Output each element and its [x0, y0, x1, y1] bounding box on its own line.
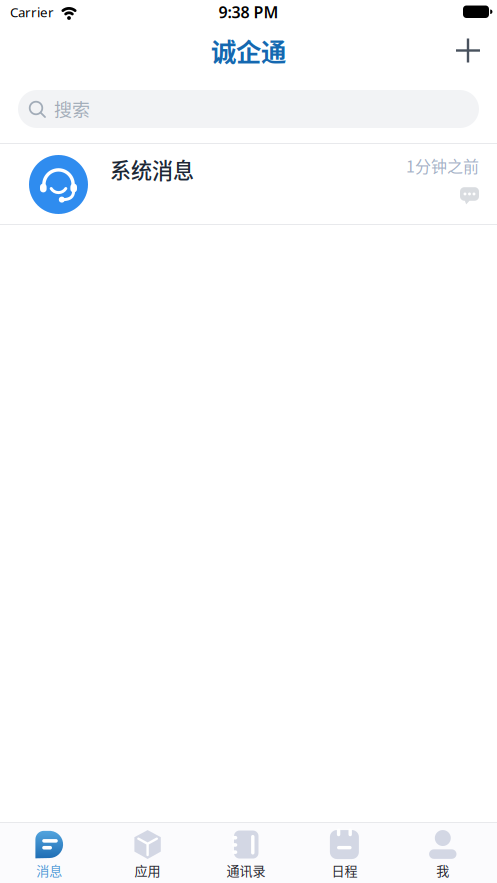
- staticText: 1分钟之前: [406, 154, 479, 177]
- staticText: 搜索: [54, 96, 90, 122]
- button[interactable]: 搜索: [0, 90, 497, 128]
- button[interactable]: 我: [394, 820, 492, 883]
- staticText: 系统消息: [110, 154, 194, 184]
- staticText: 我: [436, 860, 449, 879]
- staticText: 日程: [331, 860, 357, 879]
- staticText: 应用: [135, 860, 161, 879]
- button[interactable]: 日程: [295, 820, 394, 883]
- staticText: 9:38 PM: [218, 1, 278, 23]
- staticText: 通讯录: [226, 860, 265, 879]
- button[interactable]: Add: [455, 37, 497, 63]
- staticText: 诚企通: [211, 32, 286, 69]
- staticText: Carrier: [10, 3, 54, 21]
- button[interactable]: 应用: [98, 820, 197, 883]
- staticText: 消息: [36, 860, 62, 879]
- button[interactable]: 系统消息: [0, 144, 497, 224]
- button[interactable]: 消息: [0, 820, 98, 883]
- button[interactable]: 通讯录: [197, 820, 295, 883]
